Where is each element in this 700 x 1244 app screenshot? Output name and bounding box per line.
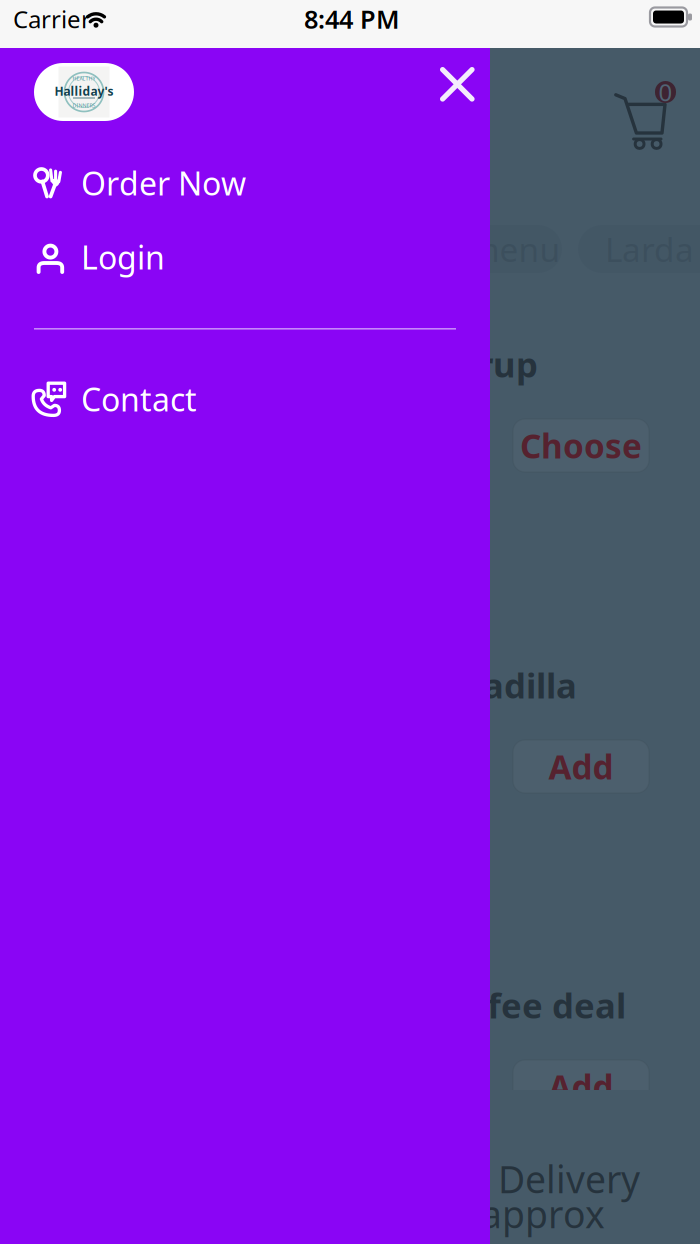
staticText: Add (548, 744, 613, 789)
staticText: Carrier (13, 3, 91, 35)
staticText: DINNERS (72, 102, 95, 109)
staticText: Choose (520, 423, 642, 468)
staticText: Login (81, 236, 165, 278)
button[interactable]: Add (513, 1060, 649, 1113)
button[interactable]: Cart, 0 items (614, 81, 678, 145)
staticText: Order Now (81, 162, 246, 204)
staticText: Full menu (403, 227, 560, 271)
staticText: Delivery (498, 1154, 640, 1204)
staticText: Contact (81, 378, 197, 420)
button[interactable]: Login (0, 225, 490, 289)
staticText: 8:44 PM (304, 2, 400, 36)
button[interactable]: Choose (513, 419, 649, 472)
button[interactable]: Contact (0, 367, 490, 431)
staticText: HEALTHY (72, 75, 95, 82)
button[interactable]: Add (513, 740, 649, 793)
staticText: 05min approx (361, 1189, 605, 1239)
staticText: Burger coffee deal (306, 982, 626, 1028)
staticText: Chicken quesadilla (253, 662, 577, 708)
staticText: Pancake syrup (285, 341, 538, 387)
staticText: Halliday's (54, 83, 113, 99)
button[interactable]: Close menu (420, 47, 495, 122)
staticText: 0 (658, 76, 672, 108)
staticText: Add (548, 1064, 613, 1109)
button[interactable]: Order Now (0, 151, 490, 215)
